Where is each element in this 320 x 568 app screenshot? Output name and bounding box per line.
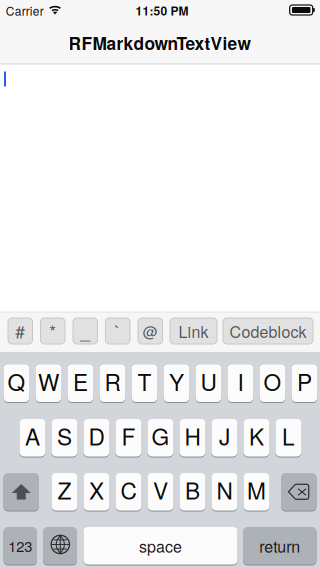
- staticText: RFMarkdownTextView: [68, 31, 250, 55]
- button[interactable]: M: [243, 472, 269, 511]
- button[interactable]: 123: [3, 526, 37, 565]
- staticText: @: [143, 320, 158, 341]
- button[interactable]: `: [105, 318, 130, 344]
- staticText: W: [38, 365, 59, 397]
- staticText: #: [15, 319, 25, 343]
- staticText: E: [73, 365, 88, 397]
- staticText: I: [237, 365, 243, 397]
- staticText: T: [137, 365, 151, 397]
- button[interactable]: V: [147, 472, 173, 511]
- staticText: F: [121, 419, 135, 452]
- button[interactable]: P: [291, 364, 317, 402]
- staticText: S: [57, 419, 72, 452]
- staticText: *: [49, 319, 56, 343]
- staticText: _: [80, 319, 90, 343]
- staticText: Y: [169, 365, 184, 397]
- button[interactable]: Y: [163, 364, 189, 402]
- staticText: C: [120, 473, 136, 506]
- staticText: D: [88, 419, 104, 452]
- button[interactable]: Codeblock: [223, 318, 313, 344]
- staticText: L: [282, 419, 295, 452]
- staticText: N: [216, 473, 232, 506]
- button[interactable]: G: [147, 418, 173, 457]
- button[interactable]: O: [259, 364, 285, 402]
- button[interactable]: I: [227, 364, 253, 402]
- staticText: return: [259, 534, 300, 557]
- button[interactable]: Delete: [281, 472, 316, 511]
- button[interactable]: return: [243, 526, 316, 565]
- staticText: 123: [8, 535, 32, 556]
- staticText: V: [153, 473, 168, 506]
- staticText: Carrier: [6, 2, 44, 19]
- staticText: Link: [178, 319, 208, 342]
- staticText: K: [249, 419, 264, 452]
- button[interactable]: Shift: [3, 472, 39, 511]
- staticText: Q: [7, 365, 25, 397]
- button[interactable]: Link: [170, 318, 217, 344]
- button[interactable]: F: [115, 418, 141, 457]
- button[interactable]: J: [211, 418, 237, 457]
- button[interactable]: T: [131, 364, 157, 402]
- button[interactable]: R: [99, 364, 125, 402]
- button[interactable]: @: [138, 318, 162, 344]
- staticText: M: [247, 473, 266, 506]
- button[interactable]: Z: [51, 472, 77, 511]
- button[interactable]: K: [243, 418, 269, 457]
- button[interactable]: X: [83, 472, 109, 511]
- button[interactable]: A: [19, 418, 45, 457]
- staticText: B: [185, 473, 200, 506]
- staticText: space: [139, 534, 182, 557]
- button[interactable]: Q: [3, 364, 29, 402]
- button[interactable]: B: [179, 472, 205, 511]
- staticText: O: [263, 365, 281, 397]
- staticText: `: [115, 319, 121, 343]
- staticText: Codeblock: [229, 319, 306, 342]
- button[interactable]: N: [211, 472, 237, 511]
- button[interactable]: W: [35, 364, 61, 402]
- staticText: H: [184, 419, 200, 452]
- staticText: U: [200, 365, 216, 397]
- staticText: 11:50 PM: [135, 2, 188, 19]
- staticText: R: [104, 365, 120, 397]
- button[interactable]: S: [51, 418, 77, 457]
- button[interactable]: C: [115, 472, 141, 511]
- staticText: Z: [57, 473, 71, 506]
- button[interactable]: space: [83, 526, 237, 565]
- staticText: X: [89, 473, 104, 506]
- button[interactable]: #: [8, 318, 32, 344]
- button[interactable]: U: [195, 364, 221, 402]
- button[interactable]: L: [275, 418, 301, 457]
- staticText: P: [297, 365, 312, 397]
- staticText: J: [219, 419, 230, 452]
- button[interactable]: E: [67, 364, 93, 402]
- button[interactable]: *: [40, 318, 65, 344]
- button[interactable]: H: [179, 418, 205, 457]
- staticText: G: [151, 419, 169, 452]
- button[interactable]: D: [83, 418, 109, 457]
- button[interactable]: _: [73, 318, 97, 344]
- button[interactable]: Next keyboard: [43, 526, 77, 565]
- staticText: A: [25, 419, 40, 452]
